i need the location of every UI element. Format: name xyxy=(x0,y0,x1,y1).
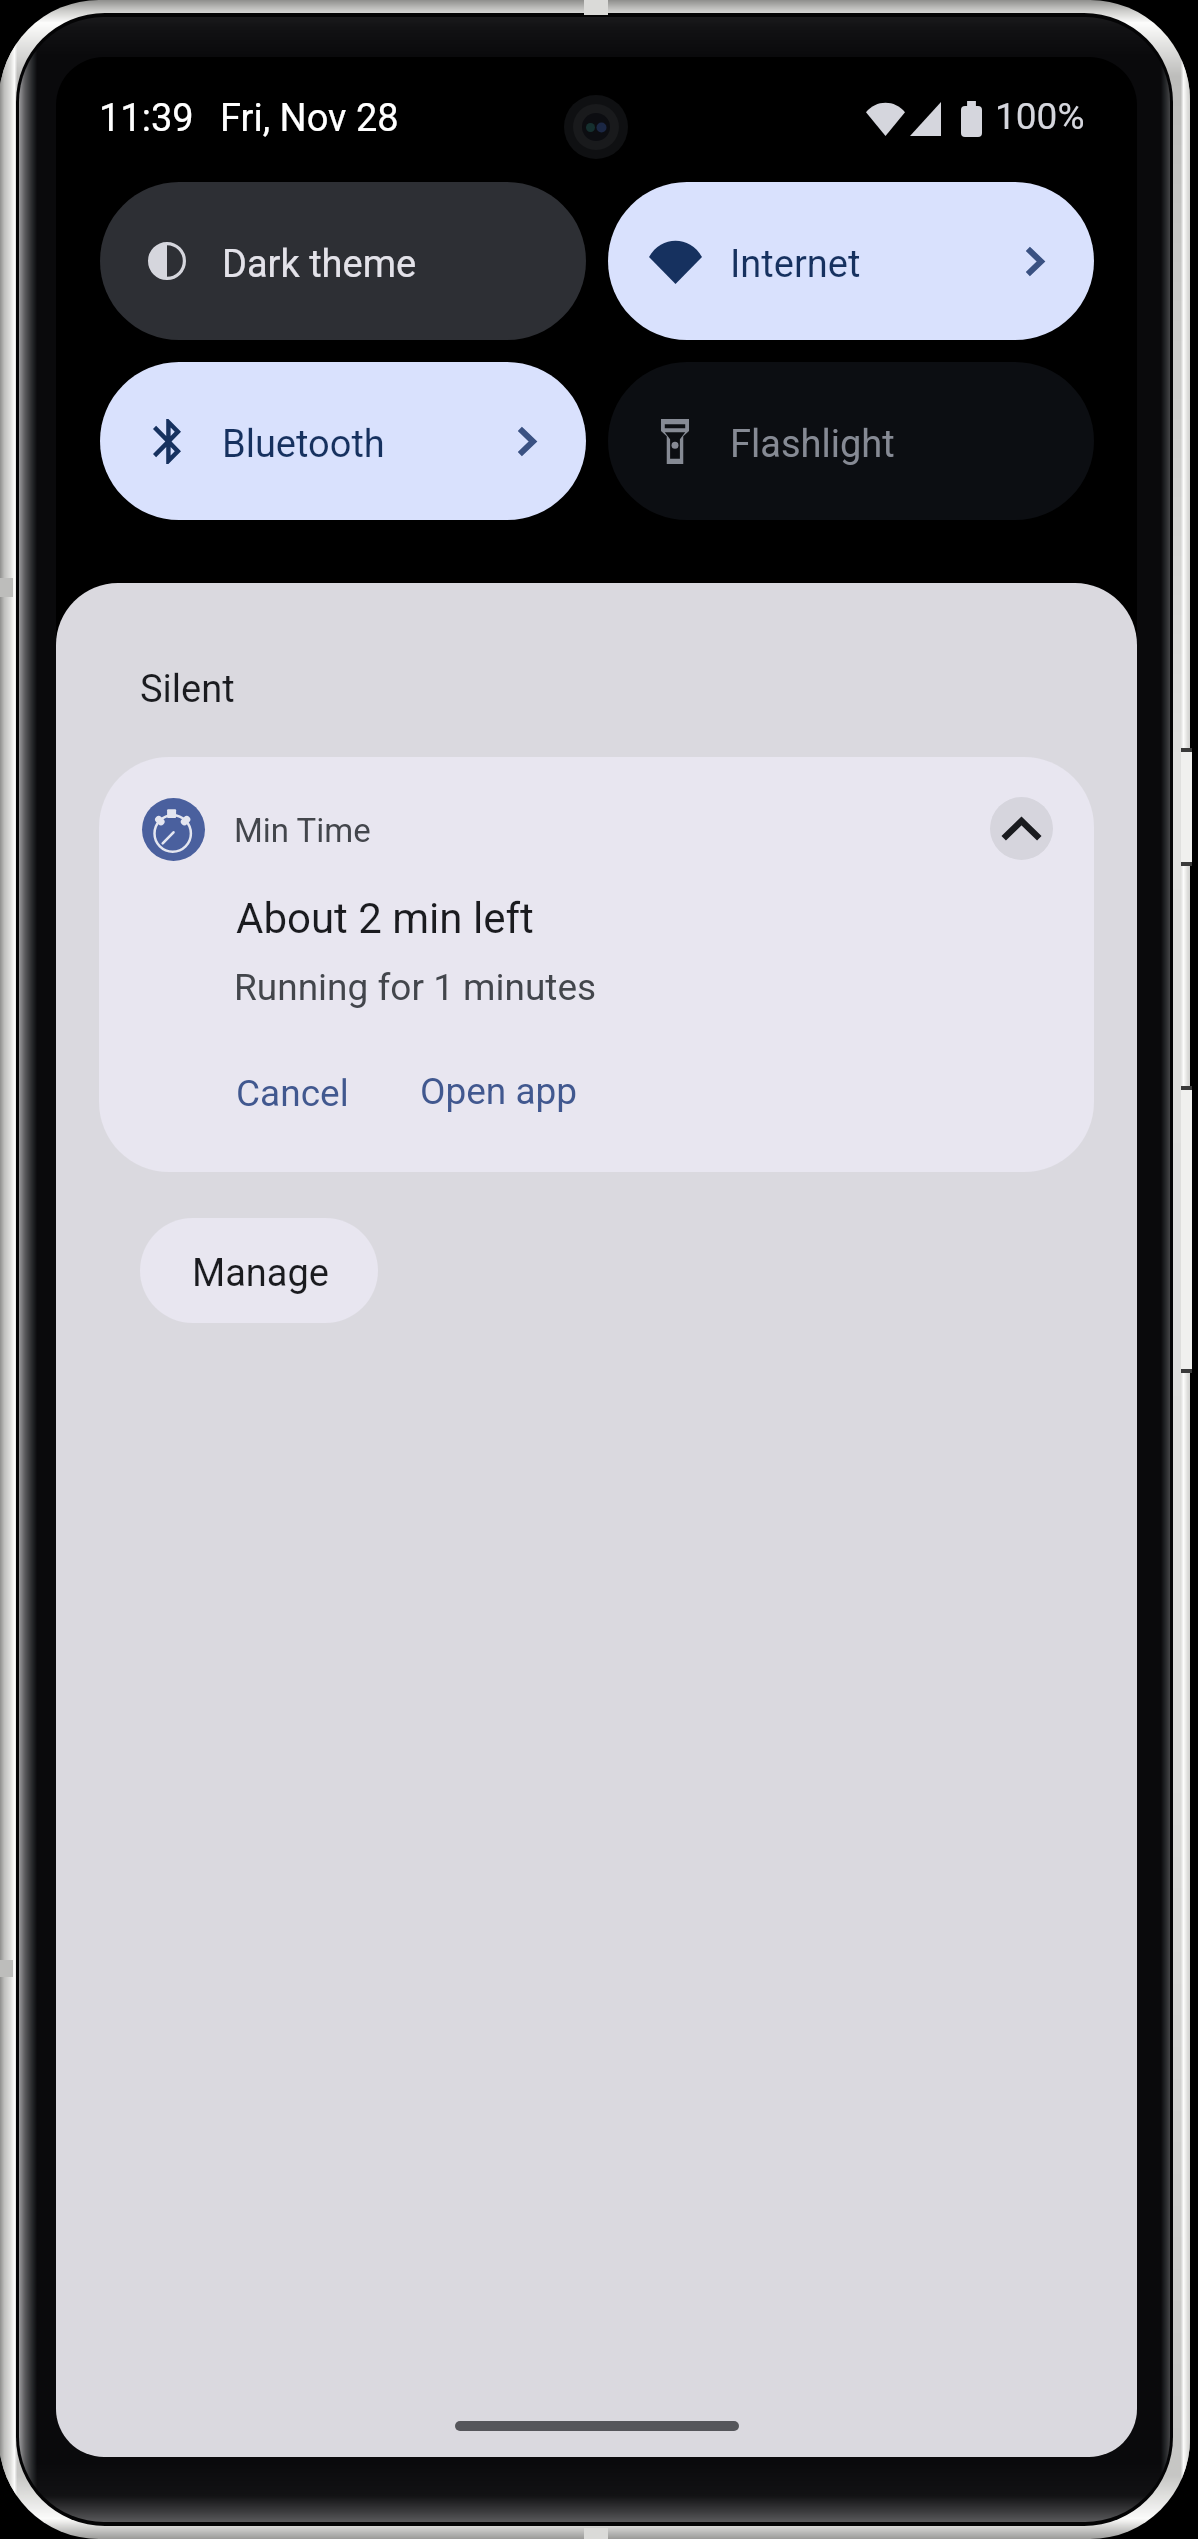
staticText: Running for 1 minutes xyxy=(234,966,597,1009)
button[interactable]: Bluetooth xyxy=(100,362,586,520)
button[interactable] xyxy=(99,757,1094,1172)
staticText: Silent xyxy=(140,667,235,712)
button[interactable]: Internet xyxy=(608,182,1094,340)
button[interactable]: Collapse notification xyxy=(990,797,1053,860)
staticText: Bluetooth xyxy=(222,422,385,467)
button[interactable]: Dark theme xyxy=(100,182,586,340)
staticText: Open app xyxy=(420,1070,578,1113)
staticText: 100% xyxy=(995,95,1085,138)
staticText: 11:39 xyxy=(99,96,194,141)
staticText: Internet xyxy=(730,242,861,287)
button[interactable]: Open app xyxy=(398,1048,600,1135)
staticText: Fri, Nov 28 xyxy=(220,96,399,141)
staticText: Flashlight xyxy=(730,422,895,467)
staticText: Min Time xyxy=(234,811,371,850)
button[interactable]: Cancel xyxy=(214,1050,371,1137)
button[interactable]: Manage xyxy=(140,1218,378,1323)
button[interactable]: Flashlight xyxy=(608,362,1094,520)
staticText: Manage xyxy=(192,1251,329,1296)
staticText: About 2 min left xyxy=(236,894,534,943)
staticText: Dark theme xyxy=(222,242,417,287)
staticText: Cancel xyxy=(236,1072,349,1115)
